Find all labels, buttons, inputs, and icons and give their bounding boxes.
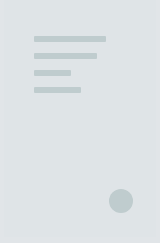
button[interactable]: Action: [109, 189, 133, 213]
